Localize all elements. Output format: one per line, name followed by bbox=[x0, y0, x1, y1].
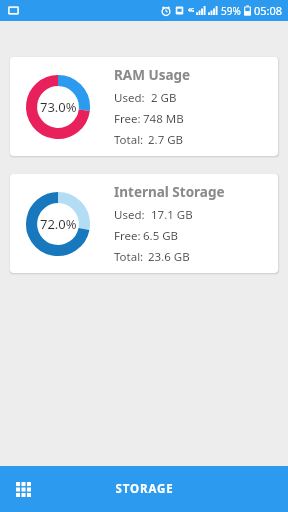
staticText: 05:08 bbox=[254, 3, 283, 18]
staticText: Internal Storage bbox=[114, 183, 225, 201]
staticText: 73.0% bbox=[40, 98, 77, 116]
button[interactable]: 72.0% bbox=[10, 174, 278, 273]
button[interactable]: STORAGE bbox=[65, 466, 223, 512]
staticText: Total: bbox=[114, 132, 144, 148]
staticText: Used: bbox=[114, 207, 145, 223]
staticText: RAM Usage bbox=[114, 66, 191, 84]
staticText: 2 GB bbox=[151, 90, 177, 106]
staticText: Used: bbox=[114, 90, 145, 106]
staticText: 23.6 GB bbox=[148, 249, 190, 265]
staticText: 4G bbox=[188, 7, 195, 14]
staticText: 17.1 GB bbox=[151, 207, 193, 223]
button[interactable]: Apps bbox=[0, 466, 46, 512]
staticText: Total: bbox=[114, 249, 144, 265]
staticText: 6.5 GB bbox=[143, 228, 179, 244]
staticText: 748 MB bbox=[143, 111, 184, 127]
staticText: Free: bbox=[114, 111, 141, 127]
staticText: Free: bbox=[114, 228, 141, 244]
button[interactable]: 73.0% bbox=[10, 57, 278, 156]
staticText: 72.0% bbox=[40, 215, 77, 233]
staticText: 2.7 GB bbox=[148, 132, 184, 148]
staticText: STORAGE bbox=[115, 481, 174, 497]
staticText: 59% bbox=[221, 4, 241, 18]
